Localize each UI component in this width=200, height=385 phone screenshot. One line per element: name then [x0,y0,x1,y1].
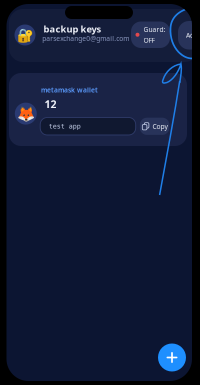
button[interactable]: Guard: [131,21,170,48]
button[interactable]: Copy [140,118,169,135]
staticText: Guard: [143,25,165,34]
button[interactable]: Add [158,343,186,371]
staticText: metamask wallet [41,86,98,94]
button[interactable]: Account [178,21,200,49]
staticText: 12 [44,97,56,111]
staticText: OFF [143,36,154,45]
staticText: test app [49,122,81,130]
staticText: parsexchange0@gmail.com [42,34,129,43]
staticText: Copy [152,122,167,131]
staticText: 🔐 [16,27,33,43]
staticText: Account [186,31,200,40]
staticText: 🦊 [17,105,35,122]
staticText: backup keys [43,23,101,35]
